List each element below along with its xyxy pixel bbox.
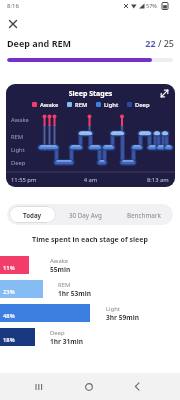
button[interactable] <box>4 15 22 33</box>
staticText: 1hr 53min <box>58 289 91 298</box>
button[interactable] <box>64 373 113 400</box>
staticText: 30 Day Avg <box>69 211 102 219</box>
staticText: Sleep Stages <box>6 89 175 99</box>
staticText: 57% <box>146 2 157 9</box>
staticText: 23% <box>3 288 15 296</box>
staticText: Light <box>106 305 120 313</box>
button[interactable] <box>113 373 162 400</box>
staticText: Time spent in each stage of sleep <box>0 235 180 245</box>
staticText: 55min <box>50 265 71 274</box>
staticText: 8:13 am <box>147 176 169 184</box>
staticText: Awake <box>40 101 59 109</box>
button[interactable]: Today <box>9 206 56 223</box>
staticText: 48% <box>3 312 15 320</box>
button[interactable] <box>14 373 64 400</box>
staticText: 18% <box>3 336 15 344</box>
staticText: 11% <box>3 264 15 272</box>
staticText: REM <box>58 281 71 289</box>
staticText: REM <box>75 101 88 109</box>
staticText: 11:55 pm <box>11 176 37 184</box>
button[interactable]: Benchmark <box>115 204 173 225</box>
button[interactable]: 30 Day Avg <box>56 204 115 225</box>
staticText: Deep <box>11 159 26 167</box>
staticText: 4 am <box>6 176 175 184</box>
staticText: 1hr 31min <box>50 337 83 346</box>
staticText: Today <box>23 211 42 219</box>
staticText: REM <box>11 133 24 141</box>
staticText: Deep and REM <box>7 37 72 49</box>
staticText: Light <box>11 146 25 154</box>
staticText: 8:16 <box>7 2 19 10</box>
staticText: 22 / 25 <box>0 37 174 49</box>
staticText: Deep <box>50 329 65 337</box>
button[interactable] <box>156 85 172 101</box>
staticText: Benchmark <box>127 211 161 219</box>
staticText: Light <box>104 101 119 109</box>
staticText: 3hr 59min <box>106 313 139 322</box>
staticText: Deep <box>135 101 150 109</box>
staticText: Awake <box>50 257 69 265</box>
staticText: Awake <box>11 116 29 124</box>
